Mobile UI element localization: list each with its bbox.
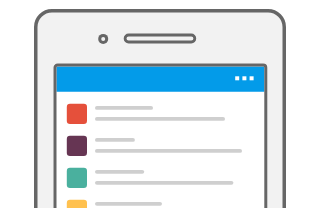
button[interactable]: Phone device illustration: [0, 0, 321, 208]
